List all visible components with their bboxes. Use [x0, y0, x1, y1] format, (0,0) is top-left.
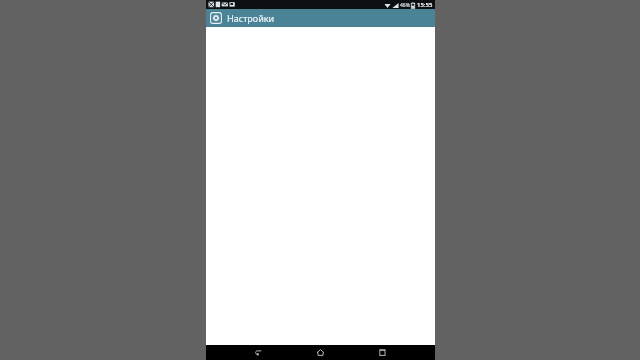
button[interactable]: Home [289, 345, 351, 360]
button[interactable]: Settings [209, 11, 223, 25]
button[interactable]: Recent apps [351, 345, 413, 360]
button[interactable]: Back [228, 345, 289, 360]
staticText: 15:55 [417, 1, 433, 9]
staticText: 46% [400, 2, 410, 9]
staticText: Настройки [227, 12, 275, 24]
